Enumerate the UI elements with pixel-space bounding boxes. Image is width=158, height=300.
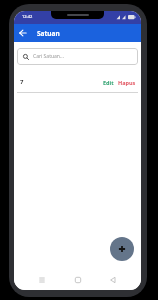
button[interactable]: 7 [14, 74, 141, 90]
button[interactable] [35, 273, 49, 287]
button[interactable] [17, 27, 29, 39]
button[interactable]: Cari Satuan... [17, 48, 138, 65]
staticText: 7 [20, 78, 24, 86]
button[interactable]: Hapus [118, 79, 136, 86]
button[interactable] [106, 273, 120, 287]
button[interactable] [71, 273, 85, 287]
staticText: Cari Satuan... [33, 53, 64, 60]
staticText: Satuan [37, 29, 60, 38]
button[interactable]: Edit [103, 79, 114, 86]
button[interactable] [110, 237, 134, 261]
staticText: 12:42 [22, 14, 33, 19]
